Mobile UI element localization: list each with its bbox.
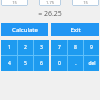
staticText: 7 bbox=[58, 44, 61, 51]
staticText: del bbox=[88, 60, 96, 67]
staticText: 1.75 bbox=[46, 0, 54, 5]
staticText: 3 bbox=[40, 44, 43, 51]
staticText: 6 bbox=[40, 60, 43, 67]
staticText: 5 bbox=[24, 60, 27, 67]
button[interactable]: 15 bbox=[72, 0, 99, 6]
staticText: Exit bbox=[70, 26, 81, 34]
button[interactable]: 15 bbox=[1, 0, 28, 6]
staticText: 2 bbox=[24, 44, 27, 51]
button[interactable]: Calculate bbox=[1, 23, 48, 36]
button[interactable]: 6 bbox=[34, 56, 49, 71]
staticText: 15 bbox=[83, 0, 88, 5]
staticText: 4 bbox=[8, 60, 11, 67]
staticText: 0 bbox=[58, 60, 61, 67]
button[interactable]: 5 bbox=[18, 56, 33, 71]
staticText: 15 bbox=[12, 0, 17, 5]
button[interactable]: . bbox=[68, 56, 83, 71]
staticText: 9 bbox=[90, 44, 93, 51]
button[interactable]: 1 bbox=[1, 40, 17, 55]
button[interactable]: 9 bbox=[84, 40, 99, 55]
button[interactable]: 8 bbox=[68, 40, 83, 55]
button[interactable]: 2 bbox=[18, 40, 33, 55]
staticText: 1 bbox=[8, 44, 11, 51]
button[interactable]: 7 bbox=[51, 40, 67, 55]
staticText: = 26.25 bbox=[38, 9, 62, 19]
staticText: Calculate bbox=[12, 26, 38, 34]
button[interactable]: del bbox=[84, 56, 99, 71]
button[interactable]: 3 bbox=[34, 40, 49, 55]
button[interactable]: Exit bbox=[51, 23, 99, 36]
button[interactable]: 4 bbox=[1, 56, 17, 71]
staticText: . bbox=[75, 60, 77, 67]
button[interactable]: 0 bbox=[51, 56, 67, 71]
staticText: 8 bbox=[74, 44, 77, 51]
button[interactable]: 1.75 bbox=[39, 0, 61, 6]
